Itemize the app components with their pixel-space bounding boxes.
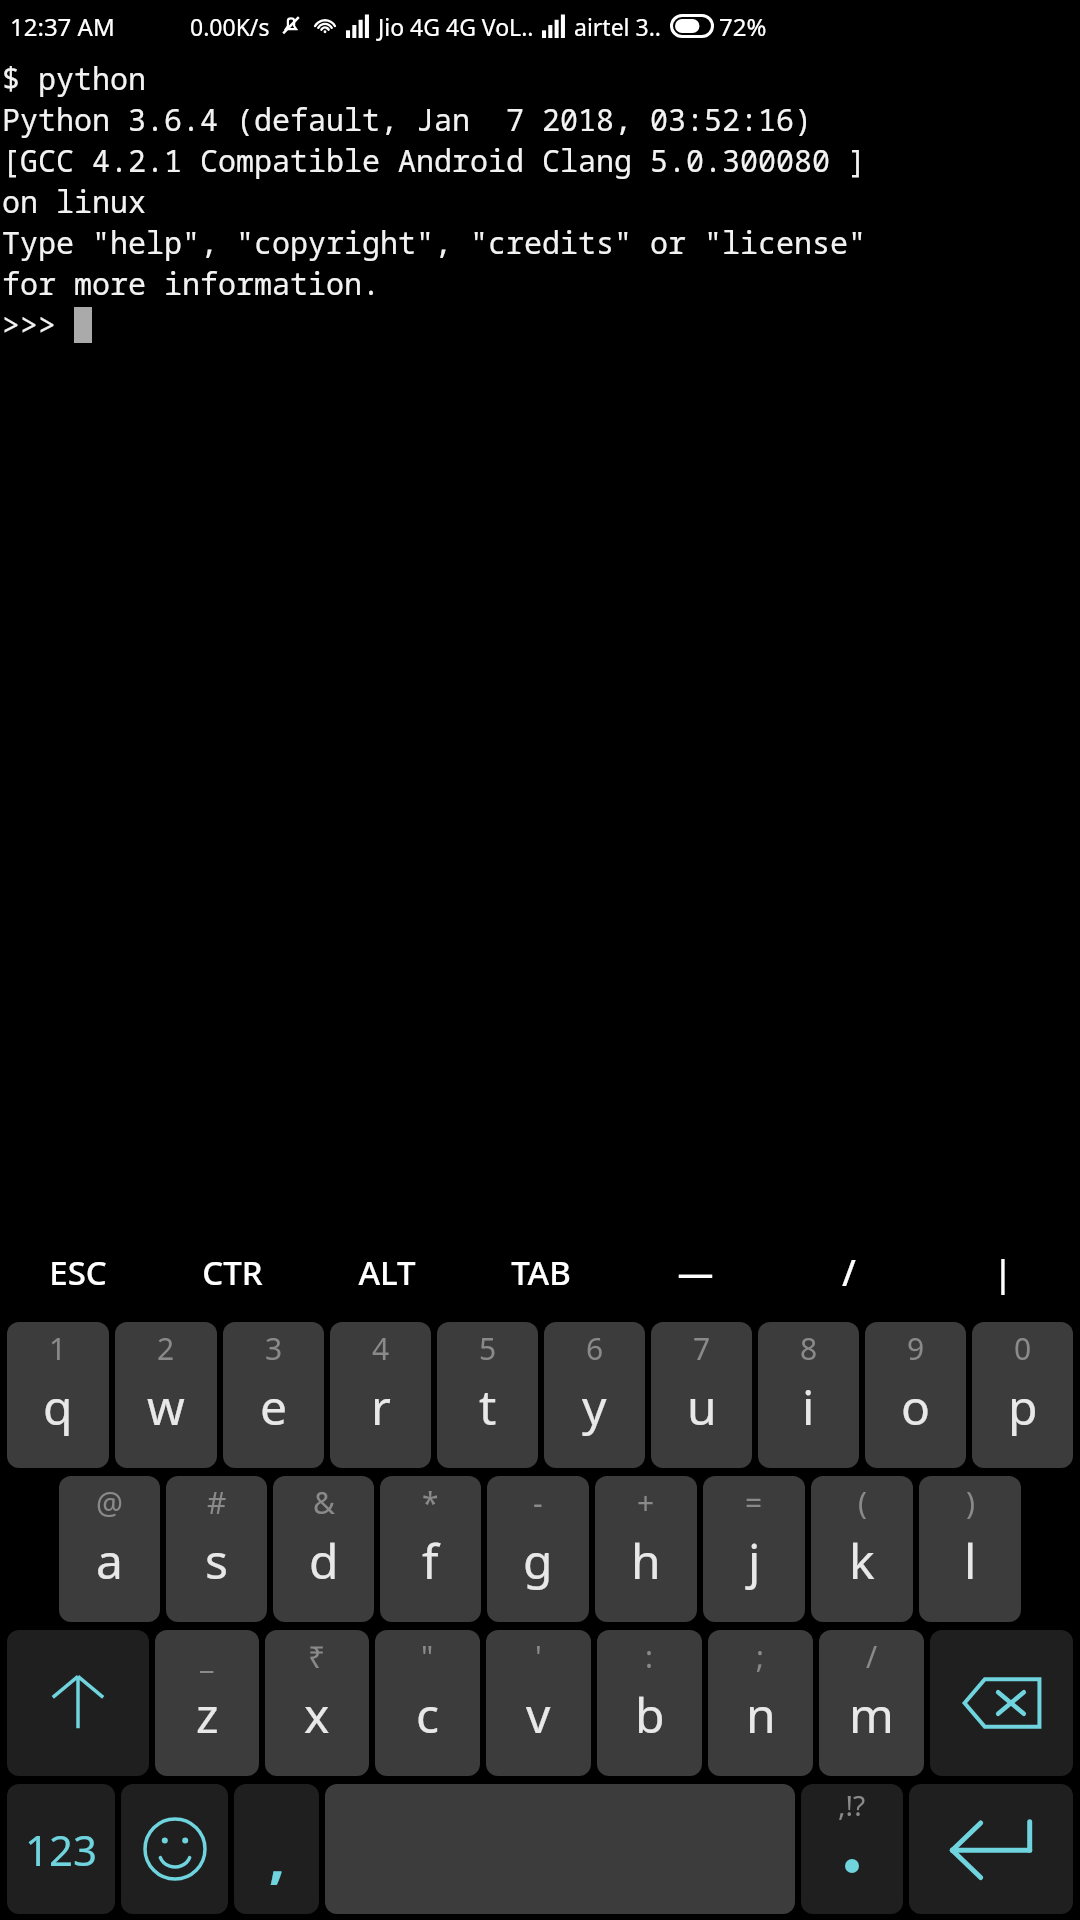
staticText: h xyxy=(631,1528,661,1593)
staticText: g xyxy=(523,1528,553,1593)
button[interactable]: 2 xyxy=(115,1322,217,1468)
staticText: f xyxy=(422,1528,439,1593)
button[interactable]: ) xyxy=(919,1476,1021,1622)
staticText: 123 xyxy=(25,1821,98,1878)
button[interactable]: ALT xyxy=(310,1222,464,1322)
staticText: on linux xyxy=(2,181,146,222)
staticText: | xyxy=(993,1248,1013,1297)
button[interactable]: ESC xyxy=(0,1222,155,1322)
staticText: d xyxy=(309,1528,339,1593)
button[interactable]: 0 xyxy=(972,1322,1073,1468)
button[interactable]: 6 xyxy=(544,1322,645,1468)
staticText: Python 3.6.4 (default, Jan 7 2018, 03:52… xyxy=(2,99,812,140)
button[interactable]: ( xyxy=(811,1476,913,1622)
button[interactable]: 7 xyxy=(651,1322,752,1468)
staticText: q xyxy=(43,1374,73,1439)
staticText: e xyxy=(260,1374,288,1439)
staticText: @ xyxy=(96,1482,123,1523)
button[interactable]: / xyxy=(819,1630,924,1776)
staticText: ; xyxy=(756,1636,765,1677)
button[interactable]: | xyxy=(926,1222,1080,1322)
button[interactable]: Shift xyxy=(7,1630,149,1776)
button[interactable]: 4 xyxy=(330,1322,431,1468)
staticText: u xyxy=(687,1374,717,1439)
staticText: a xyxy=(96,1528,123,1593)
button[interactable]: & xyxy=(273,1476,374,1622)
staticText: 0.00K/s xyxy=(190,11,270,42)
staticText: = xyxy=(745,1482,763,1523)
staticText: # xyxy=(207,1482,227,1523)
staticText: - xyxy=(533,1482,543,1523)
button[interactable]: 9 xyxy=(865,1322,966,1468)
staticText: w xyxy=(147,1374,185,1439)
staticText: 4 xyxy=(372,1328,390,1369)
staticText: — xyxy=(677,1248,714,1297)
button[interactable]: , xyxy=(234,1784,319,1914)
staticText: 8 xyxy=(800,1328,818,1369)
staticText: 9 xyxy=(907,1328,925,1369)
staticText: k xyxy=(849,1528,875,1593)
staticText: , xyxy=(269,1818,285,1894)
button[interactable]: 123 xyxy=(7,1784,115,1914)
staticText: & xyxy=(313,1482,335,1523)
button[interactable]: ' xyxy=(486,1630,591,1776)
button[interactable]: 8 xyxy=(758,1322,859,1468)
button[interactable]: ; xyxy=(708,1630,813,1776)
button[interactable]: Emoji xyxy=(121,1784,228,1914)
staticText: j xyxy=(748,1528,761,1593)
button[interactable]: @ xyxy=(59,1476,160,1622)
button[interactable]: + xyxy=(595,1476,697,1622)
staticText: 5 xyxy=(479,1328,497,1369)
staticText: : xyxy=(645,1636,654,1677)
staticText: l xyxy=(964,1528,977,1593)
staticText: r xyxy=(371,1374,391,1439)
staticText: z xyxy=(196,1682,219,1747)
button[interactable]: — xyxy=(618,1222,772,1322)
staticText: CTR xyxy=(202,1250,263,1295)
staticText: x xyxy=(304,1682,330,1747)
button[interactable]: - xyxy=(487,1476,589,1622)
staticText: ' xyxy=(535,1636,542,1677)
staticText: t xyxy=(479,1374,497,1439)
staticText: Jio 4G 4G VoL.. xyxy=(378,11,534,42)
staticText: 1 xyxy=(49,1328,67,1369)
staticText: ₹ xyxy=(308,1636,326,1677)
staticText: v xyxy=(526,1682,551,1747)
button[interactable]: 5 xyxy=(437,1322,538,1468)
button[interactable]: TAB xyxy=(464,1222,618,1322)
staticText: 2 xyxy=(157,1328,175,1369)
staticText: s xyxy=(205,1528,228,1593)
button[interactable]: Enter xyxy=(909,1784,1073,1914)
staticText: m xyxy=(849,1682,894,1747)
button[interactable]: ₹ xyxy=(265,1630,369,1776)
staticText: $ python xyxy=(2,58,146,99)
staticText: ( xyxy=(858,1482,867,1523)
button[interactable]: " xyxy=(375,1630,480,1776)
staticText: p xyxy=(1008,1374,1038,1439)
button[interactable]: CTR xyxy=(155,1222,310,1322)
staticText: 0 xyxy=(1014,1328,1032,1369)
button[interactable]: / xyxy=(772,1222,926,1322)
staticText: / xyxy=(842,1248,856,1297)
button[interactable]: ,!? xyxy=(801,1784,903,1914)
staticText: y xyxy=(582,1374,607,1439)
button[interactable]: Backspace xyxy=(930,1630,1073,1776)
staticText: ESC xyxy=(49,1250,107,1295)
button[interactable]: * xyxy=(380,1476,481,1622)
button[interactable]: 3 xyxy=(223,1322,324,1468)
button[interactable]: # xyxy=(166,1476,267,1622)
button[interactable]: 1 xyxy=(7,1322,109,1468)
staticText: b xyxy=(635,1682,665,1747)
staticText: o xyxy=(901,1374,931,1439)
button[interactable]: = xyxy=(703,1476,805,1622)
staticText: ALT xyxy=(358,1250,416,1295)
button[interactable]: : xyxy=(597,1630,702,1776)
staticText: 72% xyxy=(719,10,767,43)
staticText: n xyxy=(746,1682,776,1747)
staticText: _ xyxy=(200,1636,214,1677)
staticText: " xyxy=(421,1636,434,1677)
button[interactable]: _ xyxy=(155,1630,259,1776)
staticText: Type "help", "copyright", "credits" or "… xyxy=(2,222,866,263)
staticText: ,!? xyxy=(838,1786,866,1824)
